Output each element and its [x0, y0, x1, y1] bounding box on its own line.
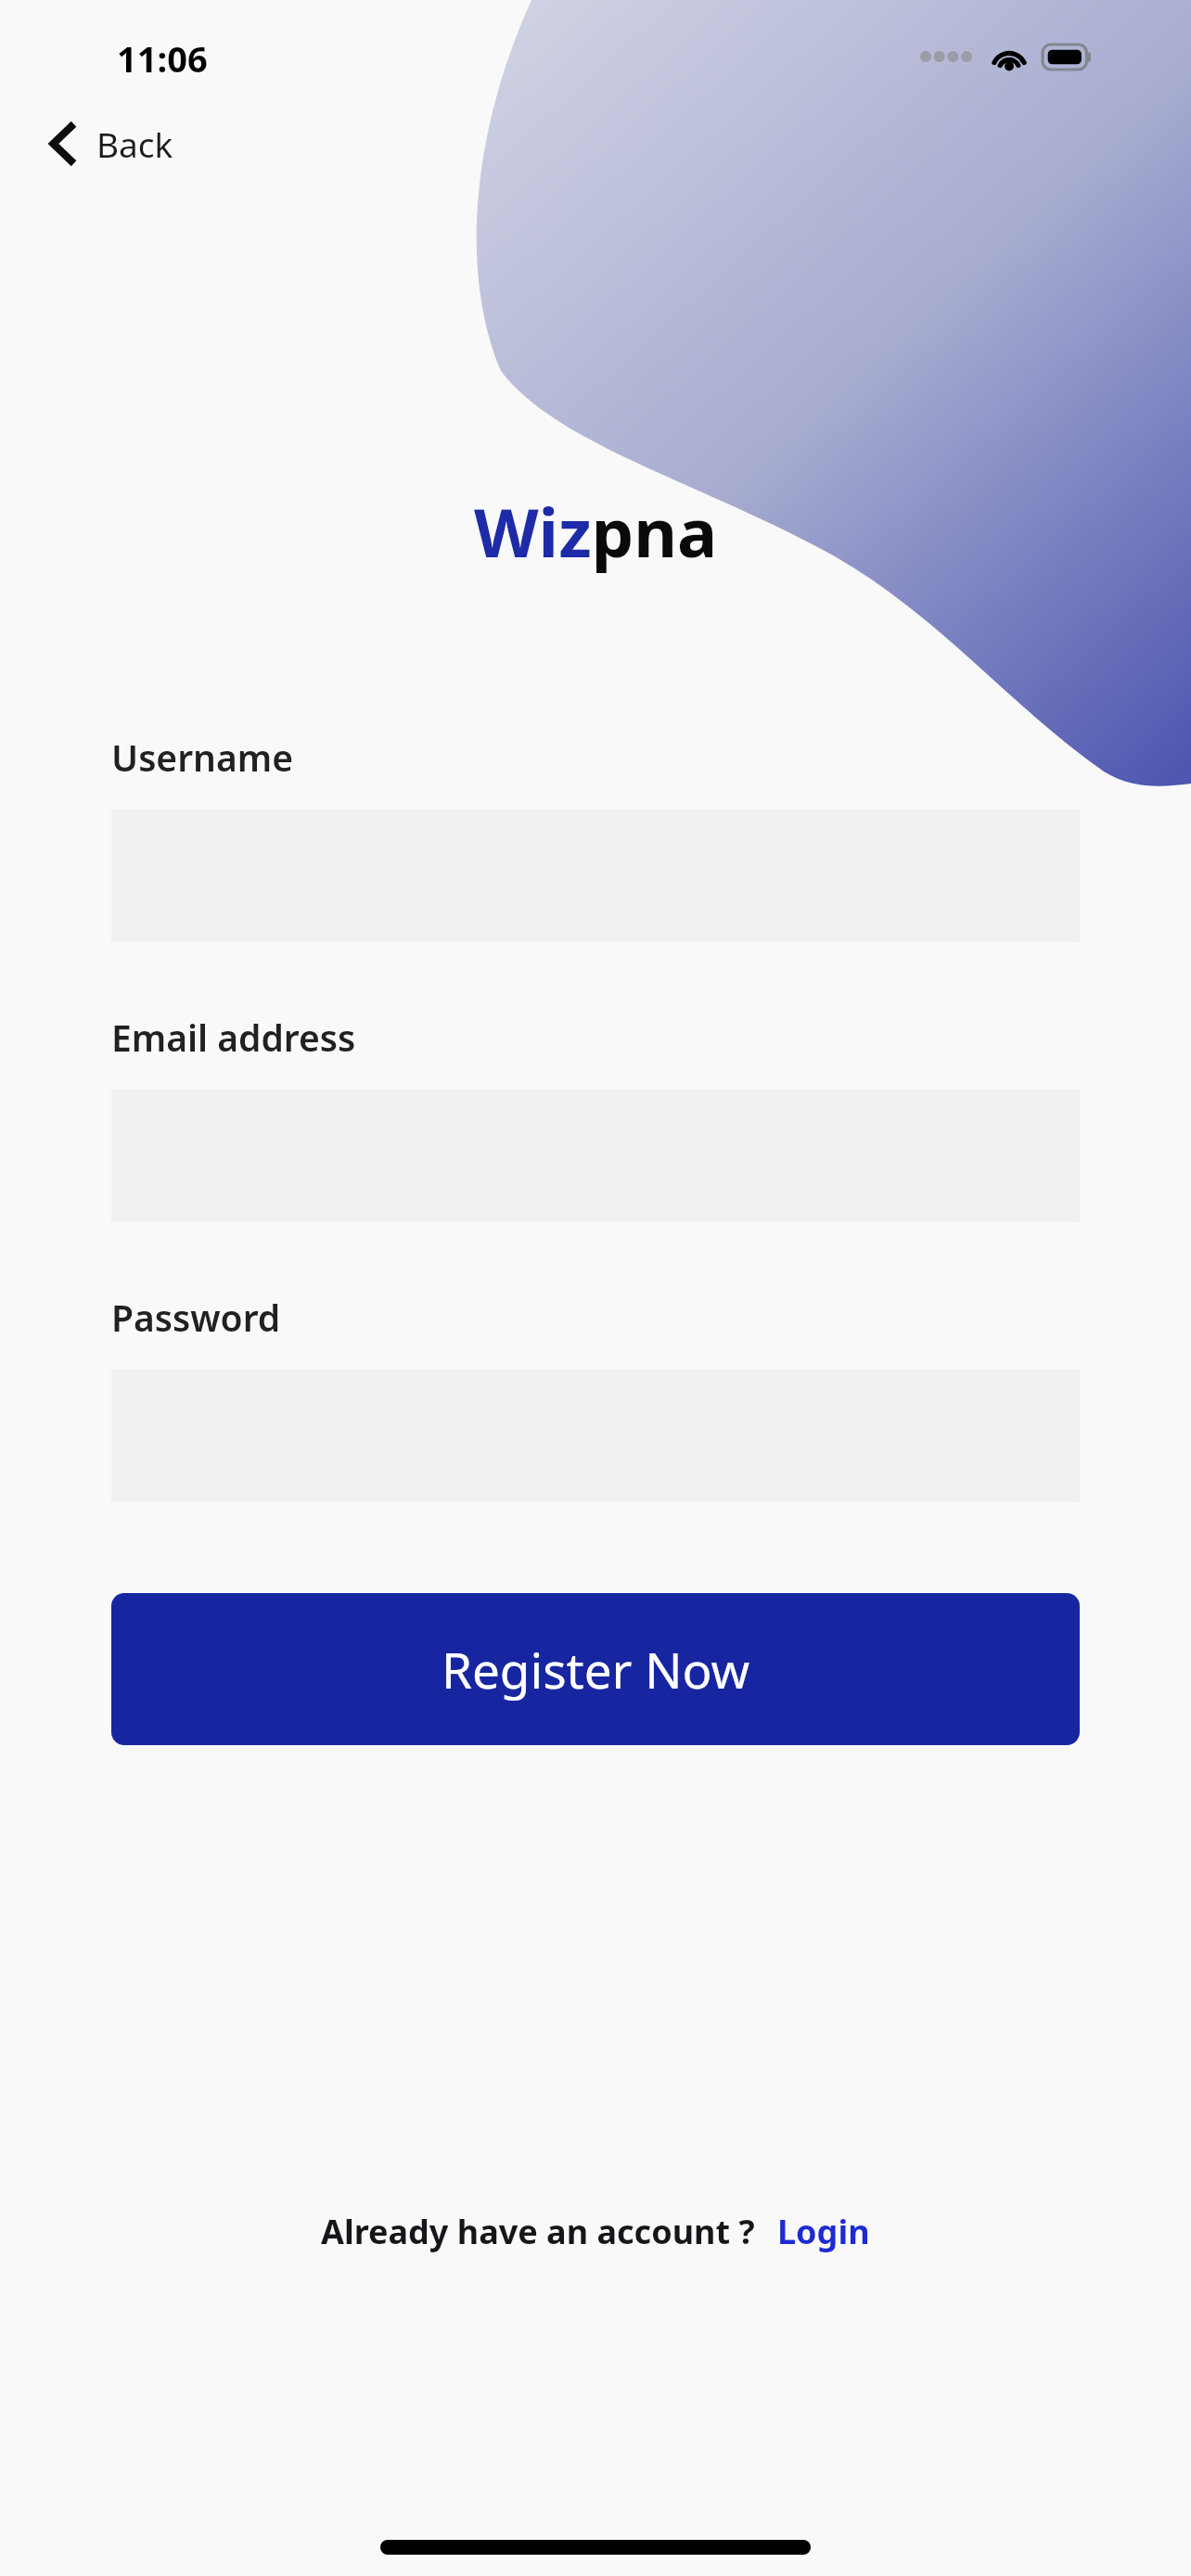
- staticText: Wizpna: [474, 486, 718, 577]
- button[interactable]: Back: [37, 104, 186, 184]
- staticText: Login: [777, 2209, 870, 2254]
- button[interactable]: Register Now: [111, 1593, 1080, 1745]
- other: Back: [50, 124, 74, 163]
- staticText: Password: [111, 1293, 281, 1342]
- staticText: Already have an account ?: [321, 2209, 755, 2254]
- staticText: Email address: [111, 1013, 356, 1062]
- button[interactable]: Login: [777, 2209, 870, 2254]
- staticText: Username: [111, 733, 294, 782]
- staticText: 11:06: [117, 34, 208, 83]
- staticText: Back: [96, 121, 173, 167]
- staticText: Register Now: [442, 1636, 750, 1702]
